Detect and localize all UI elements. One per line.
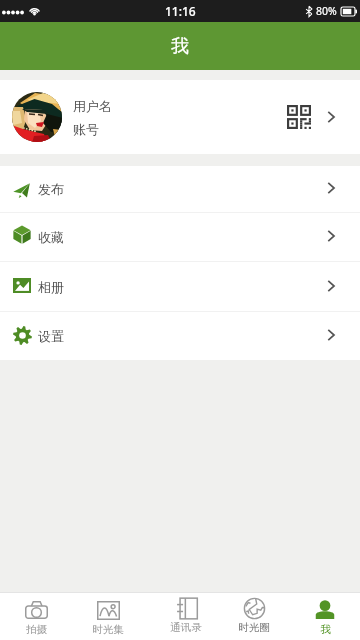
staticText: 我 bbox=[320, 623, 331, 636]
staticText: 相册 bbox=[38, 279, 64, 295]
staticText: 时光圈 bbox=[238, 621, 270, 634]
button[interactable]: 时光圈 bbox=[216, 593, 288, 640]
button[interactable]: 用户名 bbox=[0, 80, 360, 154]
staticText: 发布 bbox=[38, 181, 64, 197]
button[interactable]: 拍摄 bbox=[0, 593, 72, 640]
button[interactable]: 我 bbox=[288, 593, 360, 640]
staticText: 80% bbox=[316, 4, 337, 18]
button[interactable]: QR code bbox=[284, 102, 314, 132]
button[interactable]: 发布 bbox=[0, 166, 360, 212]
staticText: 时光集 bbox=[92, 623, 124, 636]
staticText: 拍摄 bbox=[26, 623, 47, 636]
staticText: 设置 bbox=[38, 328, 64, 344]
staticText: 11:16 bbox=[165, 3, 196, 19]
staticText: 我 bbox=[171, 35, 189, 58]
staticText: 收藏 bbox=[38, 229, 64, 245]
staticText: 账号 bbox=[73, 121, 99, 137]
button[interactable]: 收藏 bbox=[0, 213, 360, 261]
button[interactable]: 相册 bbox=[0, 262, 360, 311]
button[interactable]: 设置 bbox=[0, 312, 360, 360]
button[interactable]: 通讯录 bbox=[144, 593, 216, 640]
button[interactable]: 时光集 bbox=[72, 593, 144, 640]
staticText: 用户名 bbox=[73, 98, 112, 114]
staticText: 通讯录 bbox=[170, 621, 202, 634]
